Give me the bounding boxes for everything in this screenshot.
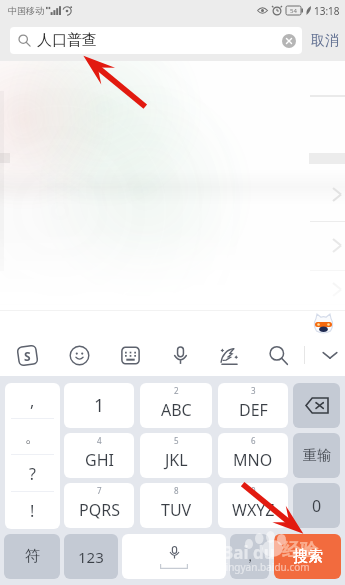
- button[interactable]: 1: [64, 383, 134, 428]
- staticText: ?: [29, 463, 36, 485]
- button[interactable]: Search: [262, 339, 294, 371]
- staticText: 重输: [303, 447, 331, 465]
- staticText: 人口普查: [37, 31, 97, 50]
- button[interactable]: 符: [4, 534, 60, 579]
- button[interactable]: 2: [140, 383, 212, 428]
- button[interactable]: 取消: [306, 27, 344, 54]
- staticText: !: [30, 500, 35, 522]
- button[interactable]: 搜索: [274, 534, 341, 579]
- button[interactable]: 0: [293, 483, 340, 528]
- staticText: 54: [290, 7, 297, 15]
- staticText: WXYZ: [232, 499, 275, 521]
- button[interactable]: ,: [5, 383, 60, 419]
- staticText: 搜索: [293, 547, 323, 566]
- staticText: 0: [312, 495, 322, 517]
- staticText: 符: [25, 547, 40, 566]
- button[interactable]: 5: [140, 433, 212, 478]
- button[interactable]: Assistant: [311, 311, 336, 336]
- staticText: 8: [174, 485, 179, 496]
- button[interactable]: !: [5, 492, 60, 529]
- button[interactable]: Emoji: [63, 339, 95, 371]
- staticText: 4: [97, 435, 102, 446]
- staticText: 经验: [282, 539, 318, 562]
- button[interactable]: 7: [64, 483, 134, 528]
- staticText: jingyan.baidu.com: [223, 560, 310, 574]
- button[interactable]: ，: [230, 534, 269, 579]
- button[interactable]: Space: [122, 534, 226, 579]
- button[interactable]: 人口普查: [10, 27, 302, 54]
- staticText: 6: [251, 435, 256, 446]
- staticText: ABC: [161, 399, 192, 421]
- staticText: 。: [25, 427, 41, 447]
- staticText: 9: [251, 485, 256, 496]
- staticText: ,: [30, 390, 35, 412]
- staticText: Bai: [222, 541, 249, 564]
- staticText: 搜索: [293, 547, 323, 566]
- button[interactable]: Backspace: [293, 383, 340, 428]
- staticText: ，: [243, 548, 257, 566]
- button[interactable]: Hide keyboard: [314, 339, 345, 371]
- button[interactable]: Clear text: [282, 34, 296, 48]
- staticText: S: [24, 348, 31, 364]
- button[interactable]: 3: [218, 383, 288, 428]
- button[interactable]: Sogou input: [11, 339, 43, 371]
- button[interactable]: 6: [218, 433, 288, 478]
- staticText: 123: [78, 547, 104, 567]
- button[interactable]: Voice input: [164, 339, 196, 371]
- staticText: 5: [174, 435, 179, 446]
- button[interactable]: ?: [5, 455, 60, 492]
- staticText: 3: [251, 385, 256, 396]
- staticText: 取消: [311, 32, 339, 50]
- staticText: du: [253, 541, 275, 564]
- staticText: JKL: [165, 449, 188, 471]
- button[interactable]: Keyboard layout: [114, 339, 146, 371]
- button[interactable]: Handwriting: [213, 339, 245, 371]
- staticText: GHI: [85, 449, 114, 471]
- staticText: MNO: [233, 449, 273, 471]
- button[interactable]: 123: [64, 534, 118, 579]
- staticText: DEF: [239, 399, 268, 421]
- staticText: 中国移动: [8, 5, 44, 16]
- staticText: 1: [94, 393, 105, 418]
- button[interactable]: 8: [140, 483, 212, 528]
- staticText: 13:18: [314, 4, 340, 18]
- staticText: TUV: [161, 499, 192, 521]
- staticText: PQRS: [79, 499, 120, 521]
- button[interactable]: 。: [5, 419, 60, 455]
- button[interactable]: 重输: [293, 433, 340, 478]
- button[interactable]: 9: [218, 483, 288, 528]
- staticText: 2: [174, 385, 179, 396]
- staticText: 7: [97, 485, 102, 496]
- button[interactable]: 4: [64, 433, 134, 478]
